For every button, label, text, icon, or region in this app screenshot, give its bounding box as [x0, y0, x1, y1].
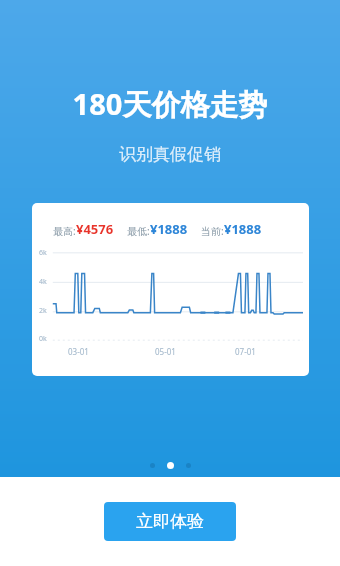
staticText: ¥1888 — [150, 220, 188, 238]
staticText: ¥4576 — [76, 220, 114, 238]
staticText: 当前: — [201, 224, 224, 238]
staticText: 0k — [39, 334, 47, 344]
staticText: 最低: — [127, 224, 150, 238]
staticText: 180天价格走势 — [0, 84, 340, 124]
staticText: 识别真假促销 — [0, 144, 340, 165]
other: Current page — [167, 462, 174, 469]
other: Page — [186, 463, 191, 468]
button[interactable]: 最高: — [32, 203, 309, 376]
staticText: 4k — [39, 277, 47, 287]
button[interactable]: 立即体验 — [104, 502, 236, 541]
staticText: 2k — [39, 306, 47, 316]
staticText: 03-01 — [68, 346, 89, 357]
staticText: 05-01 — [155, 346, 176, 357]
other: Page — [150, 463, 155, 468]
staticText: 07-01 — [235, 346, 256, 357]
staticText: ¥1888 — [224, 220, 262, 238]
staticText: 6k — [39, 248, 47, 258]
staticText: 最高: — [53, 224, 76, 238]
staticText: 立即体验 — [136, 511, 204, 532]
